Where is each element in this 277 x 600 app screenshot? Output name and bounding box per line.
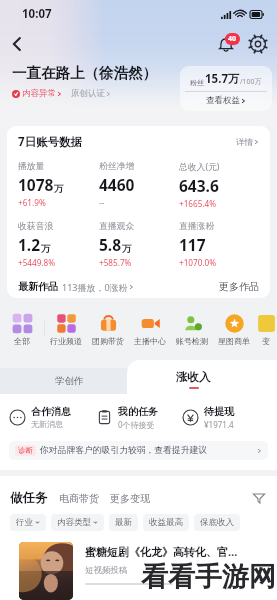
button[interactable]: 合作消息: [9, 405, 96, 429]
button[interactable]: 学创作: [0, 368, 138, 394]
button[interactable]: 更多变现: [110, 492, 150, 505]
staticText: 万: [41, 243, 51, 255]
staticText: 诊断: [18, 446, 33, 455]
staticText: /100万: [240, 77, 262, 87]
staticText: 变: [262, 336, 270, 346]
staticText: +1070.0%: [179, 257, 217, 268]
staticText: 蜜糖短剧《化龙》高转化、官…: [85, 544, 238, 559]
staticText: 直播涨粉: [179, 221, 215, 232]
button[interactable]: 行业频道: [45, 313, 87, 346]
button[interactable]: 全部: [0, 313, 44, 346]
staticText: +61.9%: [18, 197, 46, 208]
staticText: ¥1971.4: [204, 419, 234, 430]
button[interactable]: 原创认证: [71, 88, 111, 99]
staticText: 117: [179, 234, 206, 255]
button[interactable]: 变: [255, 313, 277, 346]
staticText: 万: [122, 243, 132, 255]
button[interactable]: 内容类型: [51, 514, 104, 531]
staticText: 643.6: [179, 175, 219, 196]
button[interactable]: 团购带货: [87, 313, 129, 346]
button[interactable]: 最新: [109, 514, 138, 531]
staticText: 行业: [16, 517, 33, 528]
staticText: 直播观众: [99, 221, 135, 232]
staticText: 7日账号数据: [18, 134, 83, 150]
staticText: 团购带货: [92, 336, 124, 346]
staticText: 看看手游网: [141, 560, 276, 594]
staticText: 总收入(元): [179, 161, 220, 173]
staticText: 内容异常: [22, 88, 56, 99]
button[interactable]: 更多作品: [219, 280, 259, 293]
staticText: 最新: [115, 517, 132, 528]
button[interactable]: 诊断: [9, 441, 268, 460]
staticText: 主播中心: [134, 336, 166, 346]
staticText: 全部: [14, 336, 30, 346]
button[interactable]: 涨收入: [127, 360, 277, 394]
staticText: 5.8: [99, 234, 122, 255]
button[interactable]: Notifications: [213, 31, 239, 57]
staticText: 4460: [99, 174, 135, 195]
button[interactable]: 电商带货: [59, 492, 99, 505]
staticText: 40: [228, 34, 237, 44]
button[interactable]: 粉丝: [180, 66, 272, 111]
button[interactable]: 收益最高: [143, 514, 189, 531]
button[interactable]: 做任务: [10, 490, 48, 506]
staticText: 113播放，0涨粉: [62, 281, 128, 293]
staticText: 收益最高: [149, 517, 183, 528]
staticText: 保底收入: [200, 517, 234, 528]
staticText: 电商带货: [59, 492, 99, 505]
staticText: 涨收入: [176, 370, 211, 384]
staticText: 无新消息: [31, 419, 63, 429]
button[interactable]: 星图商单: [213, 313, 255, 346]
staticText: 更多作品: [219, 280, 259, 293]
staticText: 待提现: [204, 405, 234, 418]
button[interactable]: 账号检测: [171, 313, 213, 346]
staticText: 做任务: [10, 490, 48, 506]
staticText: 原创认证: [71, 88, 105, 99]
staticText: 更多变现: [110, 492, 150, 505]
button[interactable]: 待提现: [182, 405, 268, 430]
staticText: 15.7万: [205, 71, 240, 87]
button[interactable]: 行业: [10, 514, 46, 531]
staticText: +5449.8%: [18, 257, 56, 268]
staticText: 一直在路上（徐浩然）: [12, 64, 157, 82]
staticText: 短视频投稿: [85, 565, 128, 576]
button[interactable]: 内容异常: [12, 88, 62, 99]
staticText: 学创作: [55, 375, 84, 387]
staticText: 1078: [18, 174, 54, 195]
staticText: 播放量: [18, 161, 45, 172]
staticText: 你对品牌客户的吸引力较弱，查看提升建议: [40, 445, 208, 456]
staticText: 1.2: [18, 234, 41, 255]
button[interactable]: Filter: [251, 490, 267, 506]
button[interactable]: 最新作品: [18, 280, 134, 293]
staticText: 粉丝: [190, 78, 204, 87]
button[interactable]: 保底收入: [194, 514, 240, 531]
staticText: 详情: [236, 137, 253, 148]
staticText: +1665.4%: [179, 198, 217, 209]
staticText: 10:07: [22, 6, 52, 22]
staticText: 最新作品: [18, 280, 58, 293]
staticText: 收获音浪: [18, 221, 54, 232]
staticText: 星图商单: [218, 336, 250, 346]
button[interactable]: 蜜糖短剧《化龙》高转化、官…: [19, 542, 267, 600]
staticText: 万: [54, 183, 64, 195]
button[interactable]: Back: [5, 32, 29, 56]
staticText: --: [99, 197, 105, 208]
staticText: 账号检测: [176, 336, 208, 346]
button[interactable]: 7日账号数据: [18, 134, 259, 150]
staticText: 查看权益: [206, 95, 240, 106]
staticText: 我的任务: [118, 405, 158, 418]
staticText: 内容类型: [57, 517, 91, 528]
button[interactable]: 我的任务: [96, 405, 182, 430]
button[interactable]: Settings: [245, 31, 271, 57]
staticText: 合作消息: [31, 405, 71, 418]
staticText: +585.7%: [99, 257, 132, 268]
staticText: 粉丝净增: [99, 161, 135, 172]
staticText: 行业频道: [50, 336, 82, 346]
staticText: 0个待接受: [118, 419, 155, 430]
button[interactable]: 主播中心: [129, 313, 171, 346]
